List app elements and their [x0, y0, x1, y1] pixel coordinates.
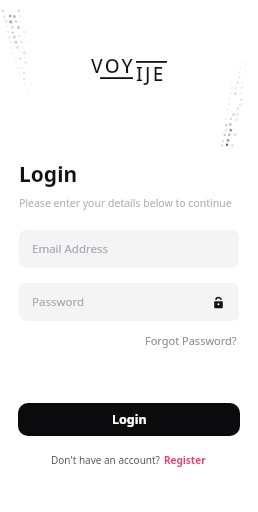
staticText: VOY — [91, 53, 135, 79]
staticText: Login — [112, 411, 147, 428]
staticText: Don't have an account? — [51, 453, 163, 467]
staticText: IJE — [136, 61, 166, 87]
button[interactable]: Email Address — [19, 230, 239, 268]
button[interactable]: Register — [163, 452, 207, 468]
button[interactable]: Password — [19, 283, 239, 321]
staticText: Register — [164, 453, 206, 467]
staticText: Login — [19, 160, 78, 189]
staticText: Please enter your details below to conti… — [19, 196, 232, 210]
button[interactable]: Login — [18, 403, 240, 436]
staticText: Password — [32, 294, 210, 310]
button[interactable]: Forgot Password? — [143, 331, 239, 350]
staticText: Forgot Password? — [145, 333, 237, 348]
staticText: Email Address — [32, 241, 226, 257]
button[interactable]: Show password — [210, 294, 226, 310]
